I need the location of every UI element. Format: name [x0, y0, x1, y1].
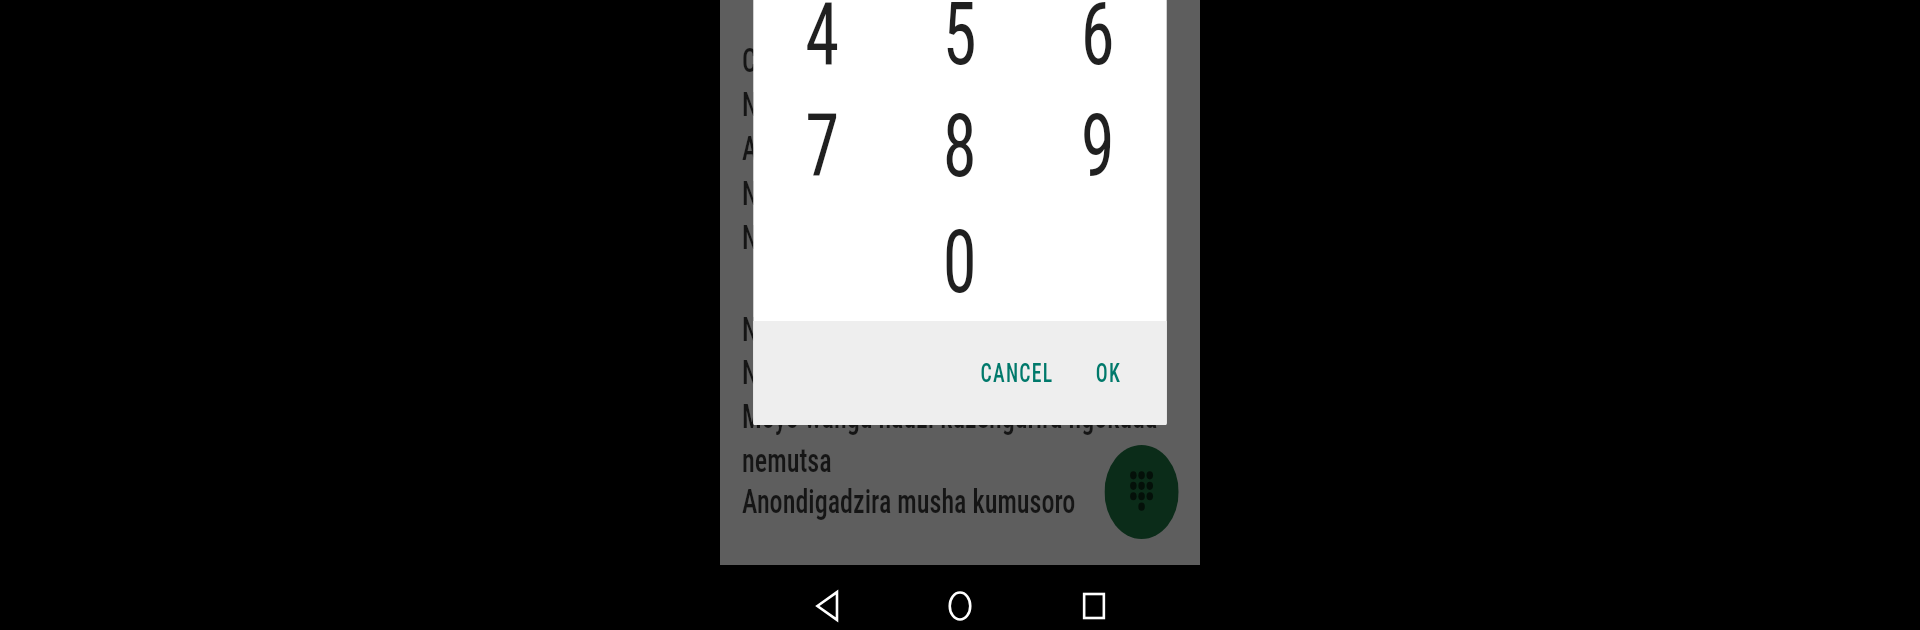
- button[interactable]: 0: [890, 200, 1029, 320]
- staticText: Ndinovimba naye nguva dzose: [742, 353, 1056, 392]
- button[interactable]: Home: [936, 582, 984, 630]
- button[interactable]: 8: [890, 88, 1029, 200]
- staticText: Ndicharamba ndakamira naye: [742, 218, 1049, 257]
- button[interactable]: 4: [753, 0, 891, 88]
- staticText: Moyo wangu hauzi kuzengurira ngokuda: [742, 397, 1158, 436]
- button[interactable]: [753, 200, 891, 320]
- staticText: Anondinyaradza ndichichema: [742, 129, 1047, 168]
- staticText: OK: [1096, 359, 1122, 388]
- staticText: Anondigadzira musha kumusoro: [742, 482, 1076, 521]
- staticText: 4: [805, 0, 839, 85]
- button[interactable]: 9: [1029, 88, 1167, 200]
- staticText: 8: [943, 95, 976, 197]
- staticText: 9: [1081, 95, 1115, 197]
- staticText: 6: [1081, 0, 1115, 85]
- staticText: Chiedza chehupenyu hwangu: [742, 41, 1043, 80]
- staticText: 5: [943, 0, 976, 85]
- button[interactable]: [1029, 200, 1167, 320]
- button[interactable]: 7: [753, 88, 891, 200]
- staticText: Ndinomuda nemoyo wangu wose: [742, 174, 1082, 213]
- button[interactable]: 6: [1029, 0, 1167, 88]
- staticText: 0: [943, 211, 976, 313]
- staticText: nemutsa: [742, 441, 832, 480]
- button[interactable]: OK: [1083, 347, 1134, 400]
- button[interactable]: Dial pad: [1104, 445, 1179, 539]
- button[interactable]: CANCEL: [968, 347, 1067, 400]
- staticText: CANCEL: [980, 359, 1054, 388]
- button[interactable]: Back: [803, 582, 851, 630]
- staticText: 7: [805, 95, 839, 197]
- staticText: Ndinofamba naye mumigwagwa: [742, 85, 1072, 124]
- button[interactable]: Recents: [1070, 582, 1118, 630]
- button[interactable]: 5: [890, 0, 1029, 88]
- staticText: Ndiye mufudzi wangu chaiye: [742, 310, 1038, 349]
